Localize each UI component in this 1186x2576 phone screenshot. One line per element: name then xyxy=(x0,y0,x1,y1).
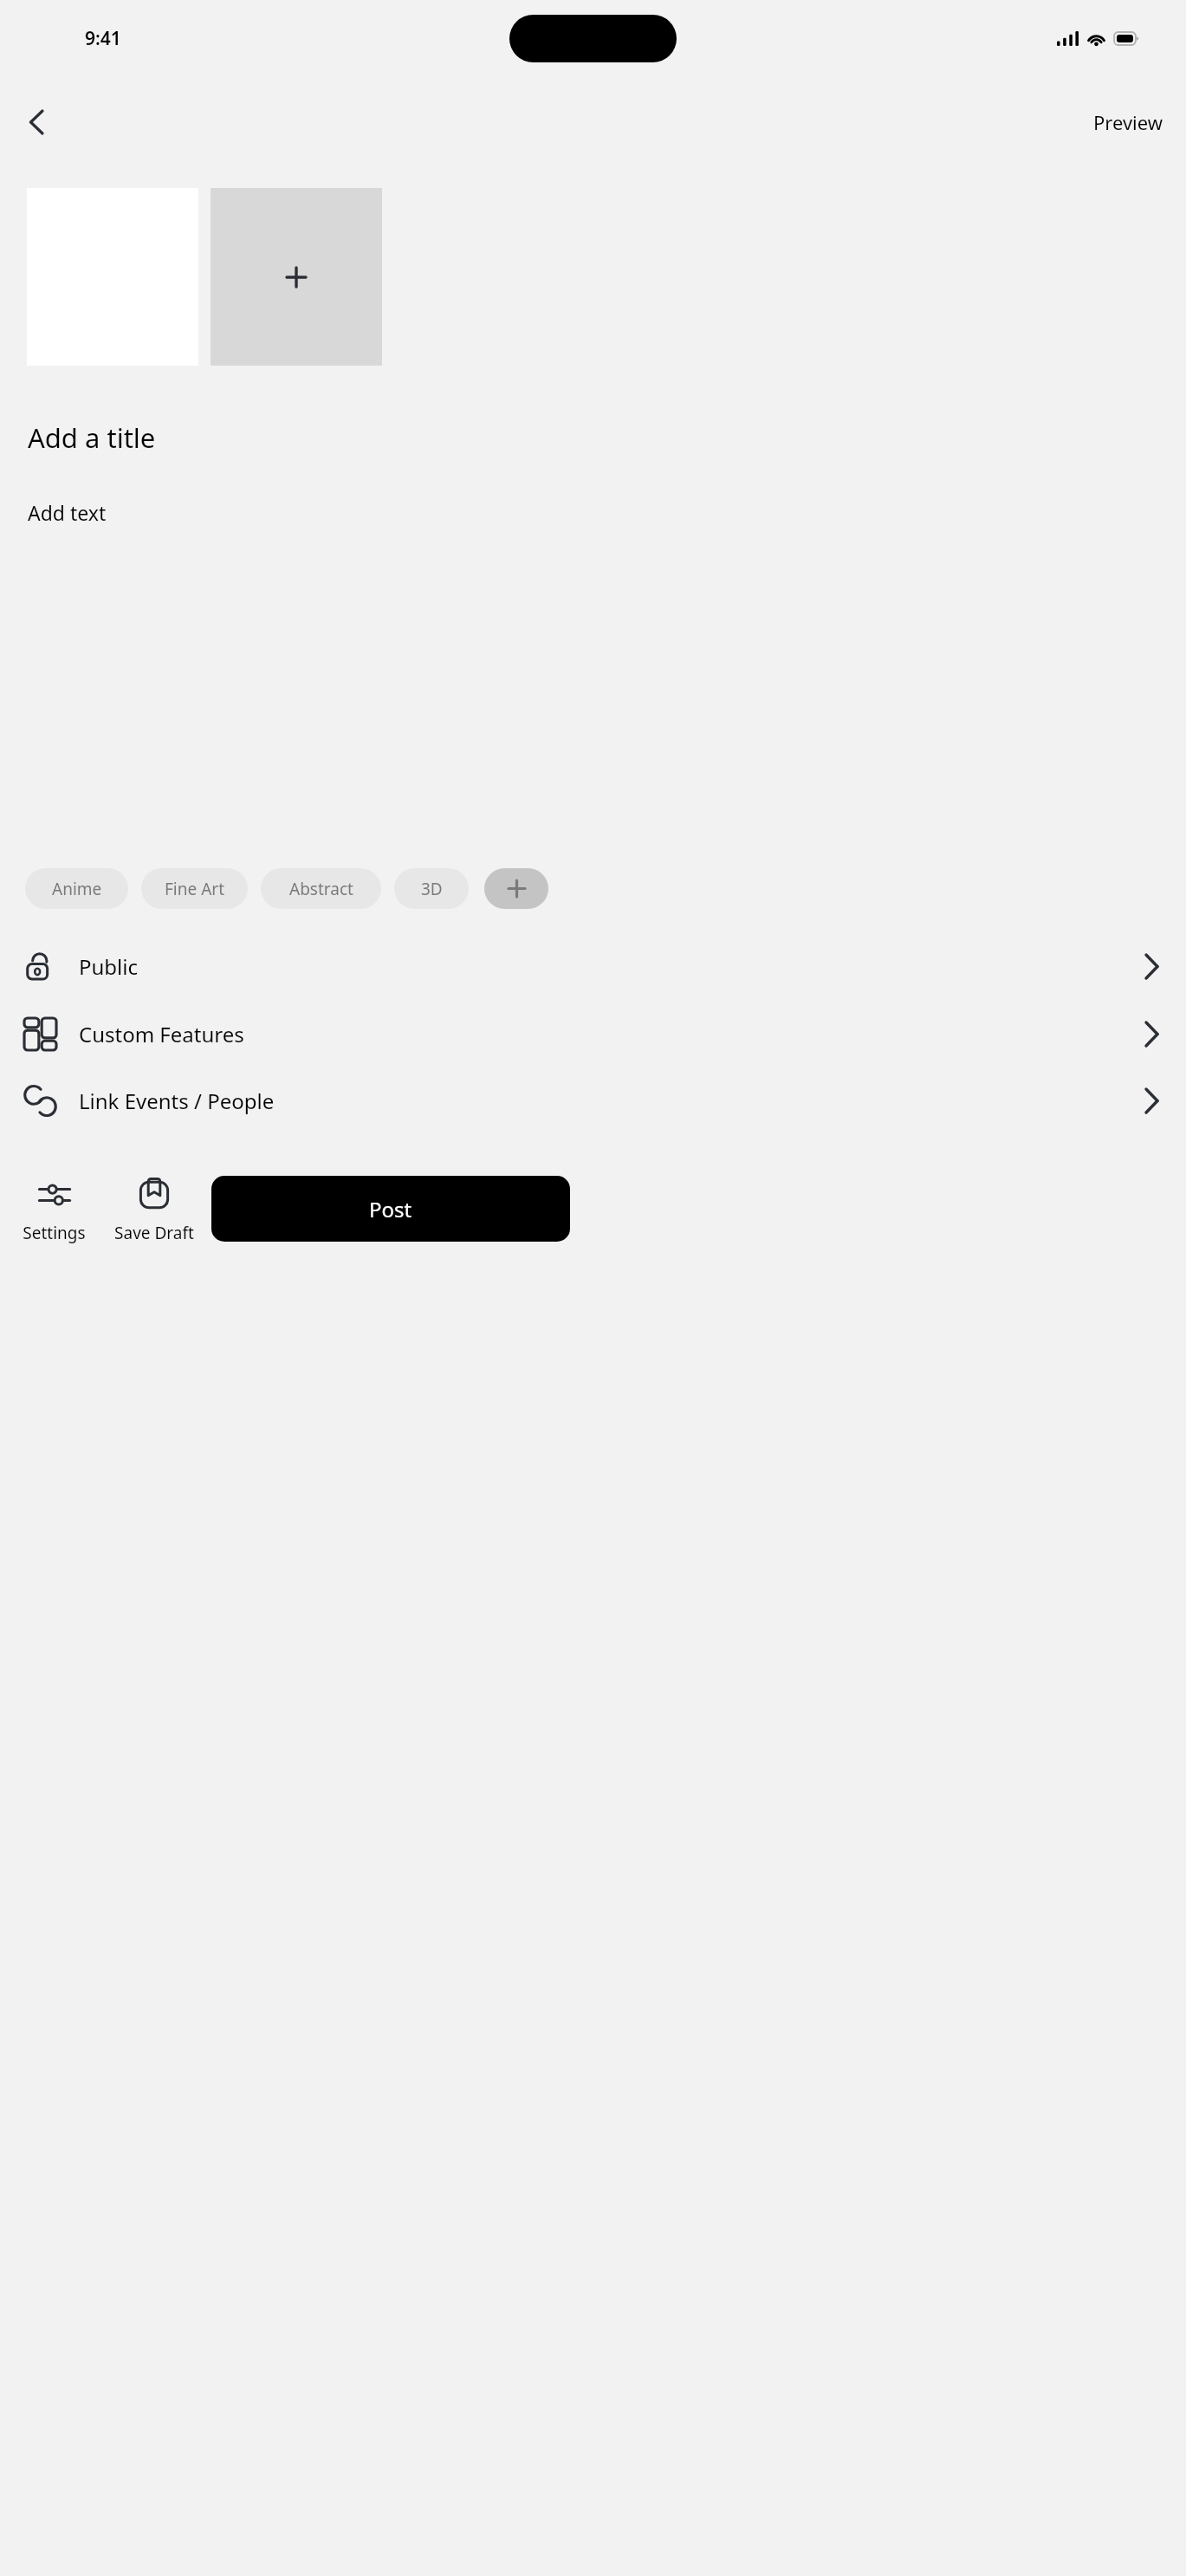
staticText: Link Events / People xyxy=(79,1087,275,1115)
staticText: Anime xyxy=(52,878,102,900)
button[interactable]: Fine Art xyxy=(141,868,248,909)
staticText: 9:41 xyxy=(85,26,121,51)
staticText: Post xyxy=(369,1195,412,1223)
button[interactable]: Save Draft xyxy=(103,1174,205,1248)
staticText: Add a title xyxy=(28,419,156,456)
staticText: Fine Art xyxy=(165,878,225,900)
staticText: 3D xyxy=(421,878,443,900)
button[interactable]: Link Events / People xyxy=(0,1068,1186,1132)
staticText: Public xyxy=(79,952,139,981)
staticText: Settings xyxy=(23,1222,86,1244)
staticText: Abstract xyxy=(289,878,353,900)
button[interactable]: Add tag xyxy=(484,868,548,909)
button[interactable]: Post xyxy=(211,1176,570,1242)
staticText: Add text xyxy=(28,499,107,526)
button[interactable]: 3D xyxy=(394,868,469,909)
button[interactable]: Back xyxy=(17,103,55,141)
button[interactable]: Settings xyxy=(12,1174,96,1248)
staticText: Save Draft xyxy=(114,1222,194,1244)
staticText: Preview xyxy=(1093,109,1163,135)
button[interactable]: Public xyxy=(0,934,1186,998)
button[interactable]: Abstract xyxy=(261,868,381,909)
button[interactable]: Preview xyxy=(1071,104,1186,140)
button[interactable]: Anime xyxy=(25,868,128,909)
staticText: Custom Features xyxy=(79,1020,244,1048)
button[interactable]: Add image xyxy=(211,188,382,366)
button[interactable]: Add a title xyxy=(14,414,170,461)
button[interactable]: Custom Features xyxy=(0,1002,1186,1066)
button[interactable]: Add text xyxy=(14,494,120,531)
